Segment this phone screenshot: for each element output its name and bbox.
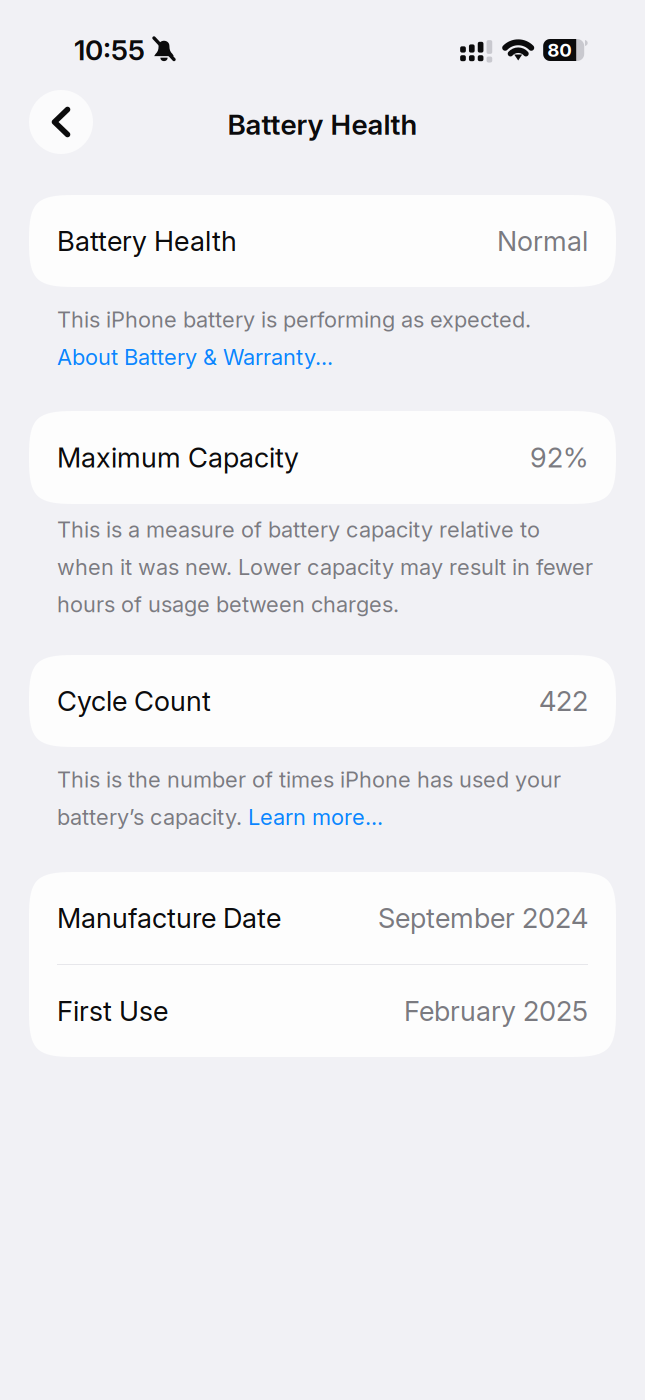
staticText: September 2024 [378, 901, 588, 935]
button[interactable]: First Use [29, 965, 616, 1057]
staticText: Battery Health [227, 108, 417, 141]
staticText: Battery Health [57, 224, 237, 258]
staticText: when it was new. Lower capacity may resu… [57, 554, 593, 580]
staticText: First Use [57, 994, 168, 1028]
staticText: 80 [547, 39, 572, 61]
button[interactable]: Maximum Capacity [0, 411, 645, 504]
staticText: This iPhone battery is performing as exp… [57, 306, 531, 333]
staticText: battery’s capacity. [57, 804, 248, 830]
staticText: About Battery & Warranty... [57, 344, 333, 370]
staticText: February 2025 [404, 994, 588, 1028]
staticText: Normal [497, 224, 588, 258]
staticText: hours of usage between charges. [57, 591, 399, 617]
button[interactable]: Manufacture Date [29, 872, 616, 964]
staticText: Cycle Count [57, 684, 211, 718]
staticText: Manufacture Date [57, 901, 281, 935]
staticText: 92% [530, 441, 588, 474]
staticText: This is a measure of battery capacity re… [57, 516, 540, 543]
staticText: 10:55 [74, 33, 145, 67]
staticText: Learn more... [248, 804, 383, 830]
button[interactable]: About Battery & Warranty... [57, 338, 333, 376]
button[interactable]: Cycle Count [0, 655, 645, 747]
button[interactable]: Back [29, 90, 93, 154]
staticText: Maximum Capacity [57, 441, 299, 474]
staticText: This is the number of times iPhone has u… [57, 766, 561, 793]
staticText: 422 [539, 684, 588, 718]
button[interactable]: Learn more... [248, 804, 383, 830]
button[interactable]: Battery Health [0, 195, 645, 287]
